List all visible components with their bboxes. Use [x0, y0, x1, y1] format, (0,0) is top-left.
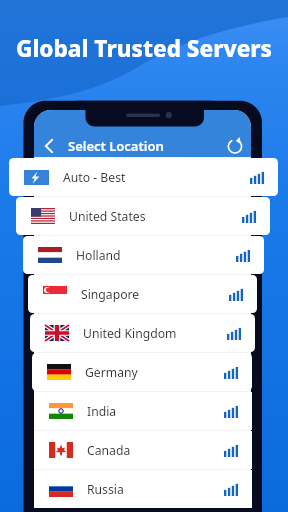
staticText: Select Location	[68, 137, 164, 155]
button[interactable]: India	[34, 392, 252, 430]
button[interactable]: Holland	[23, 236, 264, 274]
staticText: Singapore	[81, 286, 140, 303]
button[interactable]: Auto - Best	[9, 158, 278, 196]
staticText: Russia	[87, 481, 124, 498]
button[interactable]: Back	[36, 133, 62, 159]
staticText: Canada	[87, 442, 131, 459]
button[interactable]: Refresh	[222, 133, 248, 159]
button[interactable]: United States	[16, 197, 270, 235]
button[interactable]: Russia	[34, 470, 252, 508]
staticText: United States	[69, 208, 146, 225]
staticText: Holland	[76, 247, 121, 264]
staticText: Auto - Best	[63, 169, 126, 186]
button[interactable]: United Kingdom	[30, 314, 255, 352]
button[interactable]: Singapore	[28, 275, 257, 313]
staticText: Germany	[85, 364, 138, 381]
staticText: India	[87, 403, 117, 420]
staticText: Global Trusted Servers	[0, 33, 288, 64]
staticText: United Kingdom	[83, 325, 177, 342]
button[interactable]: Germany	[32, 353, 252, 391]
button[interactable]: Canada	[34, 431, 252, 469]
